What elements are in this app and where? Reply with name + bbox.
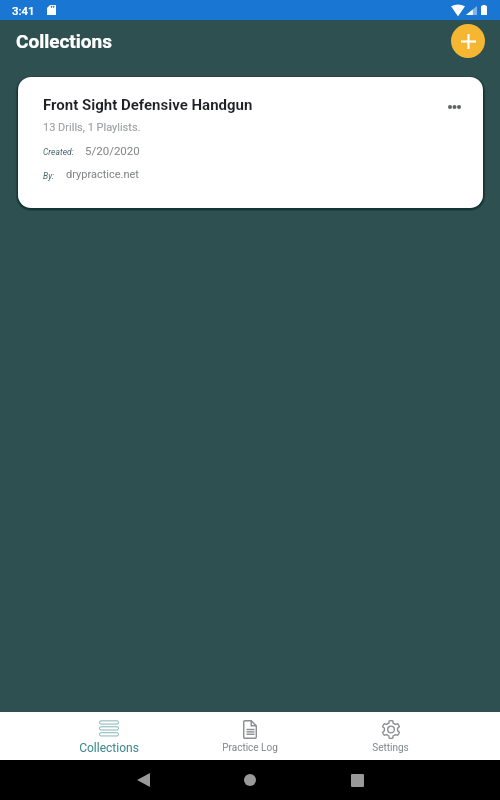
staticText: 5/20/2020 [85,144,140,157]
button[interactable]: Back [123,760,163,800]
staticText: Collections [79,741,139,755]
staticText: Settings [372,742,409,754]
button[interactable]: Front Sight Defensive Handgun [18,77,483,208]
button[interactable]: Practice Log [179,712,320,760]
staticText: Front Sight Defensive Handgun [43,96,253,114]
button[interactable]: Recents [337,760,377,800]
staticText: Created: [43,147,74,157]
staticText: 3:41 [12,4,35,17]
staticText: Collections [16,30,112,52]
button[interactable]: More options [444,101,464,113]
staticText: By: [43,171,55,181]
button[interactable]: Settings [320,712,461,760]
button[interactable]: Add collection [451,24,485,58]
button[interactable]: Home [230,760,270,800]
button[interactable]: Collections [39,712,179,760]
staticText: drypractice.net [66,168,139,181]
staticText: Practice Log [222,742,278,754]
staticText: 13 Drills, 1 Playlists. [43,121,141,134]
